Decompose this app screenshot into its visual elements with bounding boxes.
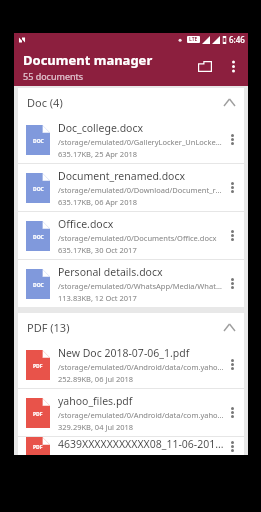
button[interactable]: File options	[224, 260, 240, 307]
button[interactable]: Doc (4)	[18, 88, 244, 116]
staticText: 329.29KB, 04 Jul 2018	[58, 422, 134, 432]
button[interactable]: PDF	[18, 437, 244, 455]
staticText: PDF	[33, 411, 43, 418]
button[interactable]: File options	[224, 164, 240, 211]
staticText: Office.docx	[58, 217, 114, 231]
staticText: /storage/emulated/0/Android/data/com.yah…	[58, 410, 224, 420]
button[interactable]: DOC	[18, 116, 244, 163]
staticText: /storage/emulated/0/Documents/Office.doc…	[58, 233, 217, 243]
button[interactable]: Browse folders	[190, 51, 220, 81]
staticText: PDF	[33, 444, 43, 451]
staticText: /storage/emulated/0/WhatsApp/Media/Whats…	[58, 281, 224, 291]
button[interactable]: PDF	[18, 341, 244, 388]
staticText: New Doc 2018-07-06_1.pdf	[58, 346, 190, 360]
staticText: PDF (13)	[27, 320, 70, 335]
staticText: PDF	[33, 363, 43, 370]
staticText: 635.17KB, 25 Apr 2018	[58, 149, 138, 159]
button[interactable]: PDF (13)	[18, 313, 244, 341]
button[interactable]: DOC	[18, 212, 244, 259]
staticText: 252.89KB, 06 Jul 2018	[58, 374, 134, 384]
staticText: Document manager	[23, 51, 153, 69]
staticText: DOC	[33, 234, 44, 241]
button[interactable]: DOC	[18, 164, 244, 211]
staticText: yahoo_files.pdf	[58, 394, 133, 408]
staticText: Personal details.docx	[58, 265, 163, 279]
staticText: /storage/emulated/0/GalleryLocker_UnLock…	[58, 137, 224, 147]
button[interactable]: File options	[224, 116, 240, 163]
button[interactable]: More options	[220, 53, 246, 79]
button[interactable]: File options	[224, 389, 240, 436]
staticText: 113.83KB, 12 Oct 2017	[58, 293, 137, 303]
button[interactable]: PDF	[18, 389, 244, 436]
staticText: 55 documents	[23, 70, 84, 82]
staticText: /storage/emulated/0/Download/Document_re…	[58, 185, 224, 195]
button[interactable]: File options	[224, 212, 240, 259]
staticText: LTE	[189, 36, 198, 43]
button[interactable]: File options	[224, 437, 240, 455]
button[interactable]: File options	[224, 341, 240, 388]
button[interactable]: DOC	[18, 260, 244, 307]
staticText: 635.17KB, 06 Apr 2018	[58, 197, 138, 207]
staticText: Document_renamed.docx	[58, 169, 186, 183]
staticText: 635.17KB, 30 Oct 2017	[58, 245, 137, 255]
staticText: 6:46	[229, 34, 245, 45]
staticText: Doc (4)	[27, 95, 63, 110]
staticText: /storage/emulated/0/Android/data/com.yah…	[58, 362, 224, 372]
staticText: Doc_college.docx	[58, 121, 144, 135]
staticText: DOC	[33, 282, 44, 289]
staticText: DOC	[33, 186, 44, 193]
staticText: DOC	[33, 138, 44, 145]
staticText: 4639XXXXXXXXXXX08_11-06-2018.PDF	[58, 437, 224, 451]
